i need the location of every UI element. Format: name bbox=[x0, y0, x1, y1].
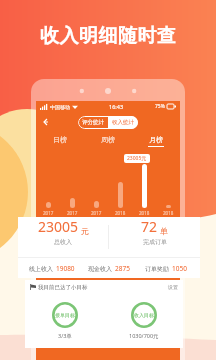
staticText: 3/3单 bbox=[58, 332, 72, 340]
staticText: 2875 bbox=[115, 264, 130, 273]
staticText: 16:43 bbox=[109, 103, 124, 110]
staticText: 现金收入 bbox=[88, 265, 112, 273]
staticText: 10 bbox=[45, 216, 51, 222]
staticText: 2018 bbox=[115, 210, 126, 216]
staticText: 2017 bbox=[91, 210, 102, 216]
staticText: 我目前已达了小目标 bbox=[38, 284, 88, 291]
staticText: 评分统计 bbox=[82, 119, 104, 126]
staticText: 总收入 bbox=[54, 238, 72, 246]
staticText: 19080 bbox=[56, 264, 75, 273]
button[interactable]: 周榜 bbox=[84, 132, 132, 150]
button[interactable]: 收入目标 bbox=[104, 294, 183, 348]
staticText: 2017 bbox=[43, 210, 54, 216]
staticText: 订单奖励 bbox=[145, 265, 169, 273]
staticText: 设置 bbox=[168, 284, 178, 290]
staticText: 线上收入 bbox=[29, 265, 53, 273]
staticText: 23005元 bbox=[127, 155, 147, 162]
staticText: 日榜 bbox=[53, 135, 67, 144]
button[interactable]: 72 bbox=[109, 217, 200, 246]
staticText: 2018 bbox=[163, 210, 174, 216]
staticText: 75% bbox=[155, 103, 165, 110]
staticText: 月榜 bbox=[149, 135, 163, 144]
staticText: 元 bbox=[81, 226, 89, 236]
staticText: 完成订单 bbox=[143, 238, 167, 246]
button[interactable]: 接单目标 bbox=[25, 294, 104, 348]
button[interactable]: 线上收入 bbox=[24, 264, 80, 273]
staticText: 23005 bbox=[38, 217, 79, 236]
button[interactable]: 23005 bbox=[18, 217, 108, 246]
staticText: 1030/700元 bbox=[129, 332, 159, 340]
staticText: 2 bbox=[143, 216, 146, 222]
staticText: 3 bbox=[167, 216, 170, 222]
staticText: 收入统计 bbox=[112, 119, 134, 126]
staticText: 12 bbox=[93, 216, 99, 222]
button[interactable]: 订单奖励 bbox=[137, 264, 194, 273]
button[interactable]: 日榜 bbox=[36, 132, 84, 150]
staticText: 11 bbox=[69, 216, 75, 222]
staticText: 2018 bbox=[139, 210, 150, 216]
button[interactable]: Back bbox=[40, 116, 52, 128]
button[interactable]: 评分统计 bbox=[78, 116, 108, 129]
button[interactable]: 收入统计 bbox=[108, 116, 138, 129]
staticText: 单 bbox=[160, 226, 168, 236]
staticText: 1050 bbox=[172, 264, 187, 273]
button[interactable]: 月榜 bbox=[132, 132, 180, 150]
staticText: 收入明细随时查 bbox=[40, 24, 177, 48]
staticText: 收入目标 bbox=[134, 312, 154, 318]
button[interactable]: 现金收入 bbox=[80, 264, 137, 273]
staticText: 72 bbox=[141, 217, 158, 236]
staticText: 周榜 bbox=[101, 135, 115, 144]
staticText: 1 bbox=[119, 216, 122, 222]
staticText: 接单目标 bbox=[55, 312, 75, 318]
staticText: 2017 bbox=[67, 210, 78, 216]
staticText: 中国移动 bbox=[50, 104, 70, 110]
